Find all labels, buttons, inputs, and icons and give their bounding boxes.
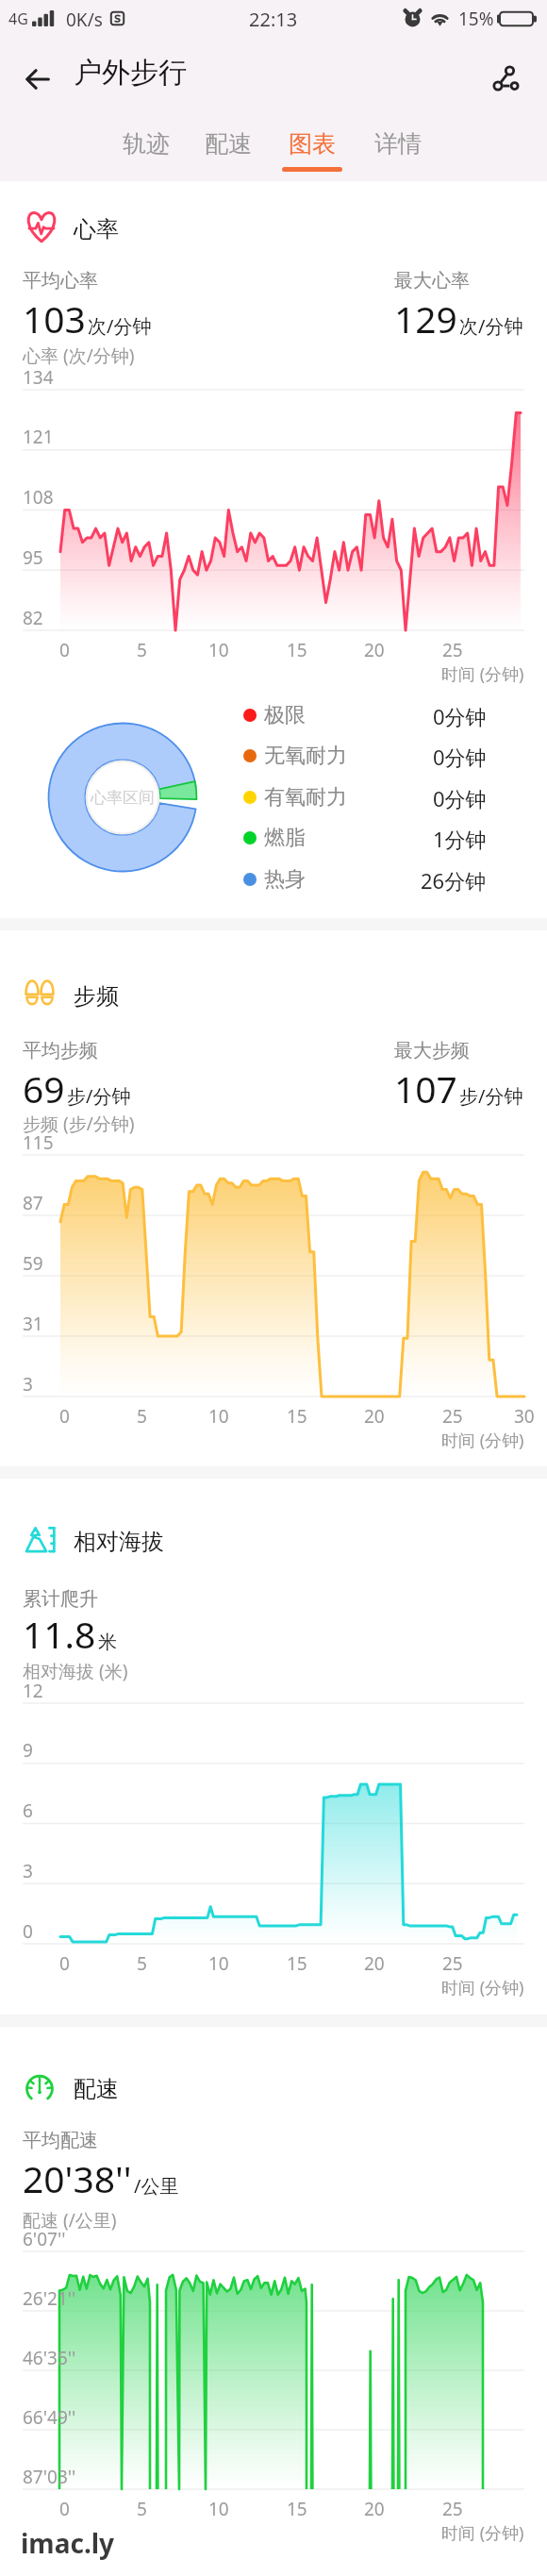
staticText: 次/分钟 (459, 313, 523, 339)
staticText: 26分钟 (421, 866, 487, 895)
staticText: 26'21'' (23, 2286, 76, 2311)
staticText: 0 (23, 1919, 33, 1944)
staticText: 最大步频 (394, 1039, 470, 1062)
staticText: 108 (23, 485, 54, 510)
staticText: 20 (364, 638, 385, 662)
staticText: 15 (287, 638, 307, 662)
staticText: 累计爬升 (23, 1587, 98, 1611)
staticText: 12 (23, 1679, 43, 1703)
staticText: 20'38'' (23, 2153, 132, 2203)
staticText: 95 (23, 545, 43, 570)
staticText: 有氧耐力 (264, 784, 347, 811)
staticText: 5 (137, 2497, 147, 2521)
staticText: 0 (59, 638, 70, 662)
staticText: 心率 (74, 215, 119, 243)
staticText: 0 (59, 1404, 70, 1429)
staticText: 配速 (205, 129, 252, 159)
staticText: 15 (287, 1404, 307, 1429)
staticText: 10 (208, 638, 229, 662)
staticText: 107 (394, 1063, 457, 1113)
staticText: 步频 (步/分钟) (23, 1112, 135, 1136)
staticText: 心率 (次/分钟) (23, 343, 135, 368)
staticText: 轨迹 (123, 129, 170, 159)
button[interactable]: Share (473, 45, 538, 113)
staticText: 3 (23, 1859, 33, 1883)
staticText: 25 (442, 638, 463, 662)
staticText: 5 (137, 1404, 147, 1429)
staticText: 户外步行 (74, 55, 187, 91)
staticText: 20 (364, 1951, 385, 1976)
staticText: 22:13 (249, 7, 298, 32)
staticText: 平均配速 (23, 2129, 98, 2152)
button[interactable]: 配速 (186, 113, 271, 181)
staticText: 69 (23, 1063, 65, 1113)
staticText: 0分钟 (433, 702, 487, 730)
staticText: 6 (23, 1798, 33, 1823)
staticText: 0分钟 (433, 743, 487, 771)
staticText: 115 (23, 1130, 54, 1155)
staticText: 121 (23, 425, 54, 449)
staticText: 59 (23, 1251, 43, 1276)
staticText: 时间 (分钟) (441, 662, 524, 686)
staticText: 次/分钟 (88, 313, 152, 339)
staticText: 极限 (264, 702, 306, 728)
staticText: 时间 (分钟) (441, 2521, 524, 2545)
staticText: 10 (208, 1404, 229, 1429)
staticText: 15 (287, 2497, 307, 2521)
staticText: 20 (364, 2497, 385, 2521)
staticText: 4G (8, 8, 28, 29)
staticText: 详情 (374, 129, 422, 159)
staticText: 3 (23, 1372, 33, 1397)
staticText: 燃脂 (264, 825, 306, 851)
staticText: imac.ly (21, 2525, 115, 2561)
staticText: 6'07'' (23, 2227, 66, 2251)
staticText: 129 (394, 293, 457, 343)
staticText: 图表 (289, 129, 336, 159)
button[interactable]: 图表 (270, 113, 355, 181)
staticText: 步频 (74, 982, 119, 1011)
staticText: 1分钟 (433, 825, 487, 853)
staticText: 无氧耐力 (264, 743, 347, 769)
staticText: 0 (59, 1951, 70, 1976)
staticText: 31 (23, 1312, 43, 1336)
staticText: 平均心率 (23, 269, 98, 293)
staticText: 时间 (分钟) (441, 1429, 524, 1452)
staticText: 平均步频 (23, 1039, 98, 1062)
staticText: 10 (208, 2497, 229, 2521)
staticText: 5 (137, 638, 147, 662)
staticText: 87 (23, 1191, 43, 1215)
staticText: 11.8 (23, 1609, 96, 1659)
staticText: 25 (442, 1404, 463, 1429)
staticText: 相对海拔 (74, 1528, 164, 1556)
staticText: 5 (137, 1951, 147, 1976)
button[interactable]: 轨迹 (104, 113, 189, 181)
staticText: 配速 (74, 2075, 119, 2103)
staticText: 9 (23, 1738, 33, 1763)
staticText: 配速 (/公里) (23, 2208, 117, 2233)
staticText: 最大心率 (394, 269, 470, 293)
staticText: 米 (98, 1631, 117, 1654)
staticText: 热身 (264, 866, 306, 893)
staticText: 0K/s (66, 8, 103, 32)
staticText: 步/分钟 (67, 1083, 131, 1109)
staticText: 15 (287, 1951, 307, 1976)
staticText: 25 (442, 2497, 463, 2521)
staticText: 134 (23, 365, 54, 390)
staticText: 25 (442, 1951, 463, 1976)
staticText: 时间 (分钟) (441, 1976, 524, 1999)
staticText: /公里 (134, 2173, 179, 2199)
staticText: 心率区间 (91, 788, 155, 808)
staticText: 103 (23, 293, 86, 343)
staticText: 30 (514, 1404, 535, 1429)
staticText: 46'35'' (23, 2346, 76, 2370)
staticText: 66'49'' (23, 2405, 76, 2430)
staticText: 步/分钟 (459, 1083, 523, 1109)
staticText: 82 (23, 606, 43, 630)
button[interactable]: 详情 (356, 113, 440, 181)
staticText: 87'03'' (23, 2465, 76, 2489)
staticText: 15% (458, 7, 494, 31)
button[interactable]: Back (8, 45, 68, 113)
staticText: 10 (208, 1951, 229, 1976)
staticText: 0分钟 (433, 784, 487, 812)
staticText: 0 (59, 2497, 70, 2521)
